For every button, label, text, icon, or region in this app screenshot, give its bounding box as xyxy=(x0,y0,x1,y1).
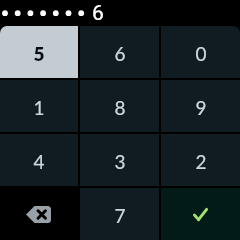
staticText: 2 xyxy=(195,150,207,173)
button[interactable]: 7 xyxy=(80,188,159,240)
staticText: 8 xyxy=(114,96,126,119)
staticText: 3 xyxy=(114,150,126,173)
button[interactable]: 2 xyxy=(161,134,240,186)
staticText: 5 xyxy=(33,42,45,65)
button[interactable]: 4 xyxy=(0,134,78,186)
button[interactable]: Confirm xyxy=(161,188,240,240)
button[interactable]: Backspace xyxy=(0,188,78,240)
staticText: 4 xyxy=(33,150,45,173)
button[interactable]: 5 xyxy=(0,26,78,78)
staticText: 1 xyxy=(33,96,45,119)
button[interactable]: 9 xyxy=(161,80,240,132)
button[interactable]: 0 xyxy=(161,26,240,78)
button[interactable]: 8 xyxy=(80,80,159,132)
staticText: 6 xyxy=(114,42,126,65)
button[interactable]: 6 xyxy=(80,26,159,78)
staticText: 9 xyxy=(195,96,207,119)
staticText: 6 xyxy=(92,1,104,26)
staticText: 7 xyxy=(114,204,126,227)
button[interactable]: 3 xyxy=(80,134,159,186)
staticText: 0 xyxy=(195,42,207,65)
button[interactable]: 1 xyxy=(0,80,78,132)
